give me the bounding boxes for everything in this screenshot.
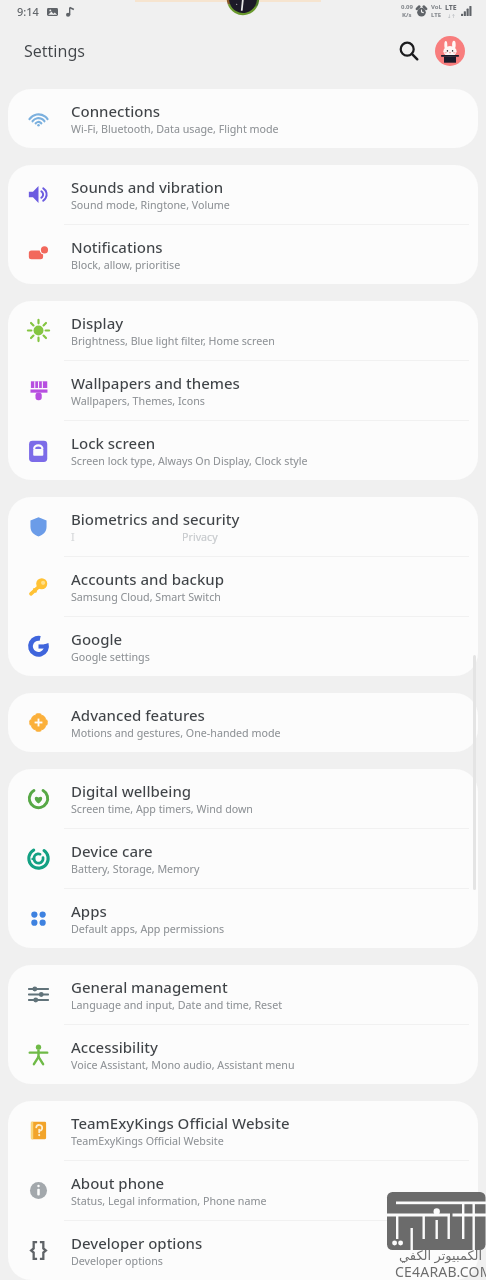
button[interactable]: TeamExyKings Official Website [8,1101,478,1160]
button[interactable]: Profile [435,36,465,66]
staticText: Google [71,629,123,649]
button[interactable]: About phone [8,1161,478,1220]
staticText: CE4ARAB.COM [395,1262,486,1280]
staticText: Language and input, Date and time, Reset [71,998,283,1013]
staticText: Privacy [182,530,218,545]
staticText: 9:14 [17,4,39,19]
staticText: الكمبيوتر الكفي [399,1246,483,1264]
button[interactable]: Digital wellbeing [8,769,478,828]
staticText: Settings [24,40,85,62]
staticText: TeamExyKings Official Website [71,1113,290,1133]
staticText: Accessibility [71,1037,158,1057]
staticText: Advanced features [71,705,205,725]
button[interactable]: General management [8,965,478,1024]
staticText: General management [71,977,228,997]
staticText: VoL [431,3,442,11]
staticText: Digital wellbeing [71,781,192,801]
staticText: Biometrics and security [71,509,240,529]
staticText: Sound mode, Ringtone, Volume [71,198,230,213]
staticText: Wallpapers, Themes, Icons [71,394,205,409]
staticText: Notifications [71,237,163,257]
staticText: Screen lock type, Always On Display, Clo… [71,454,308,469]
staticText: Voice Assistant, Mono audio, Assistant m… [71,1058,295,1073]
staticText: Wi-Fi, Bluetooth, Data usage, Flight mod… [71,122,279,137]
button[interactable]: Advanced features [8,693,478,752]
button[interactable]: Device care [8,829,478,888]
staticText: TeamExyKings Official Website [71,1134,224,1149]
staticText: Samsung Cloud, Smart Switch [71,590,221,605]
staticText: Developer options [71,1233,203,1253]
staticText: Display [71,313,124,333]
button[interactable]: Search [389,31,429,71]
button[interactable]: Notifications [8,225,478,284]
button[interactable]: Lock screen [8,421,478,480]
staticText: Connections [71,101,161,121]
staticText: Accounts and backup [71,569,224,589]
staticText: Sounds and vibration [71,177,224,197]
staticText: Developer options [71,1254,163,1269]
button[interactable]: Google [8,617,478,676]
button[interactable]: Wallpapers and themes [8,361,478,420]
staticText: Brightness, Blue light filter, Home scre… [71,334,275,349]
staticText: I [71,530,75,545]
button[interactable]: Accessibility [8,1025,478,1084]
staticText: Device care [71,841,153,861]
button[interactable]: Accounts and backup [8,557,478,616]
button[interactable]: Developer options [8,1221,478,1280]
button[interactable]: Sounds and vibration [8,165,478,224]
staticText: Battery, Storage, Memory [71,862,200,877]
staticText: Block, allow, prioritise [71,258,181,273]
staticText: Motions and gestures, One-handed mode [71,726,281,741]
button[interactable]: Biometrics and security [8,497,478,556]
staticText: K/s [402,11,412,19]
staticText: LTE [431,11,442,19]
staticText: Google settings [71,650,150,665]
staticText: Status, Legal information, Phone name [71,1194,267,1209]
staticText: 0.09 [401,3,413,11]
staticText: About phone [71,1173,165,1193]
staticText: Wallpapers and themes [71,373,240,393]
button[interactable]: Connections [8,89,478,148]
staticText: Screen time, App timers, Wind down [71,802,253,817]
staticText: LTE [445,3,457,13]
staticText: Default apps, App permissions [71,922,225,937]
staticText: Apps [71,901,107,921]
staticText: Lock screen [71,433,156,453]
button[interactable]: Display [8,301,478,360]
staticText: ↓↑ [447,13,456,19]
button[interactable]: Apps [8,889,478,948]
